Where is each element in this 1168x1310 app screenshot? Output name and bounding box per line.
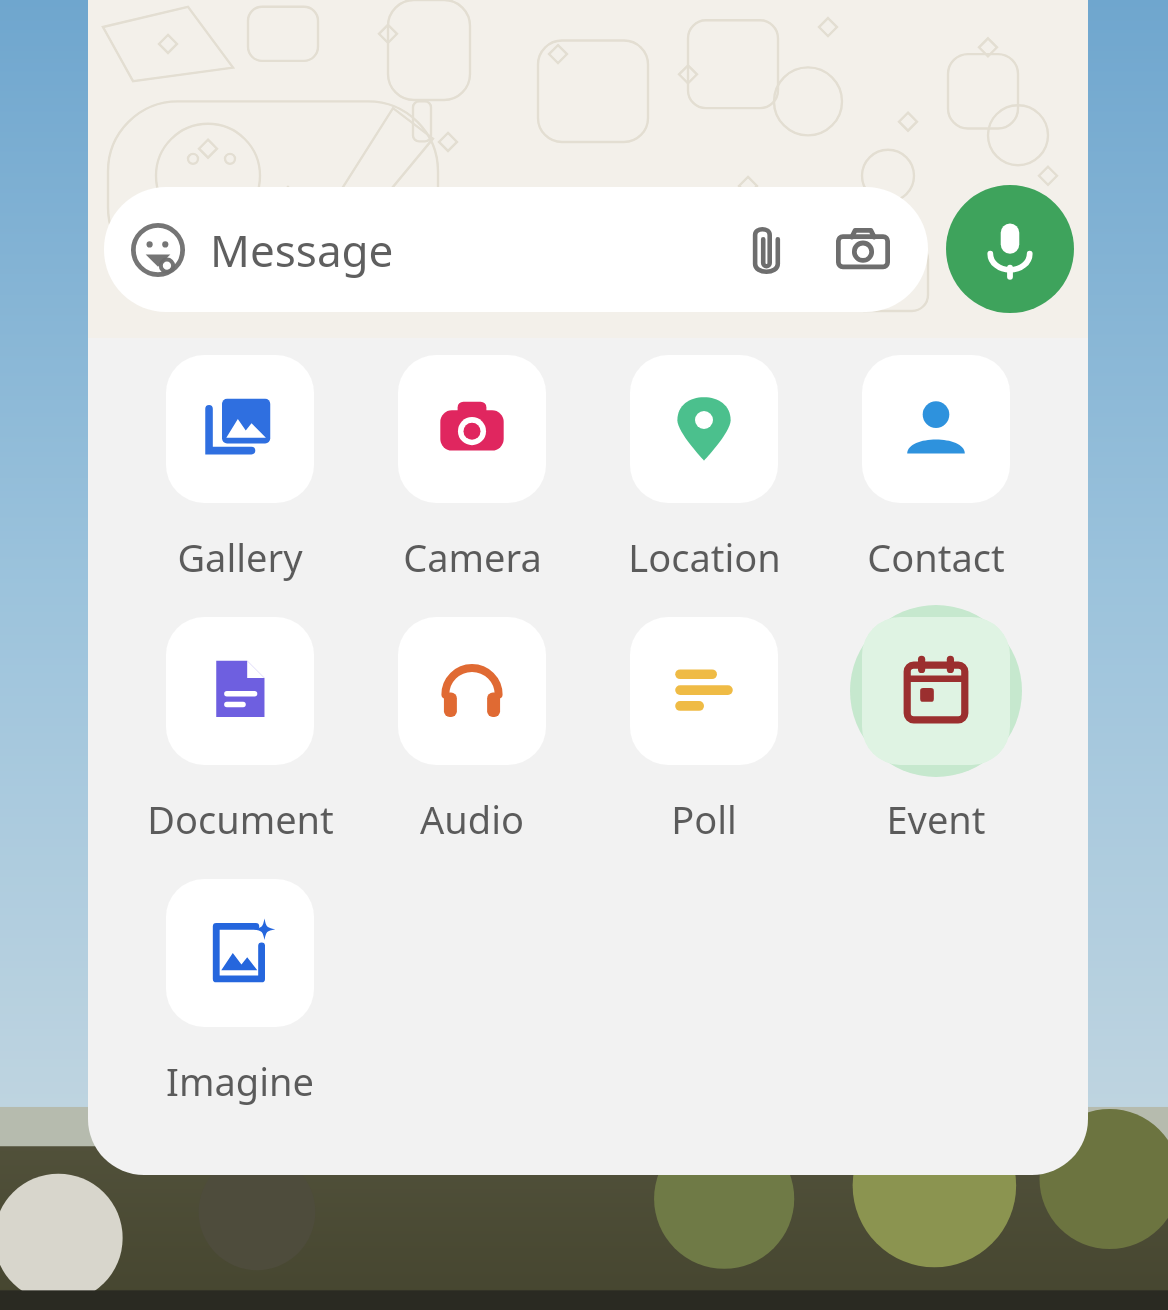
staticText: Audio: [420, 793, 524, 845]
button[interactable]: Location: [588, 343, 820, 583]
button[interactable]: Camera: [356, 343, 588, 583]
button[interactable]: Contact: [820, 343, 1052, 583]
button[interactable]: Gallery: [124, 343, 356, 583]
button[interactable]: Imagine: [124, 867, 356, 1107]
button[interactable]: Event: [820, 605, 1052, 845]
staticText: Event: [886, 793, 986, 845]
button[interactable]: Attach: [732, 215, 802, 285]
staticText: Imagine: [166, 1055, 314, 1107]
button[interactable]: Stickers and emoji: [128, 220, 188, 280]
staticText: Gallery: [177, 531, 303, 583]
staticText: Poll: [671, 793, 737, 845]
button[interactable]: Audio: [356, 605, 588, 845]
staticText: Camera: [403, 531, 542, 583]
staticText: Message: [210, 220, 732, 280]
staticText: Location: [628, 531, 781, 583]
button[interactable]: Camera: [828, 215, 898, 285]
staticText: Contact: [867, 531, 1005, 583]
button[interactable]: Document: [124, 605, 356, 845]
staticText: Document: [147, 793, 334, 845]
button[interactable]: Record voice message: [946, 185, 1074, 313]
button[interactable]: Poll: [588, 605, 820, 845]
button[interactable]: Stickers and emoji: [104, 187, 928, 312]
